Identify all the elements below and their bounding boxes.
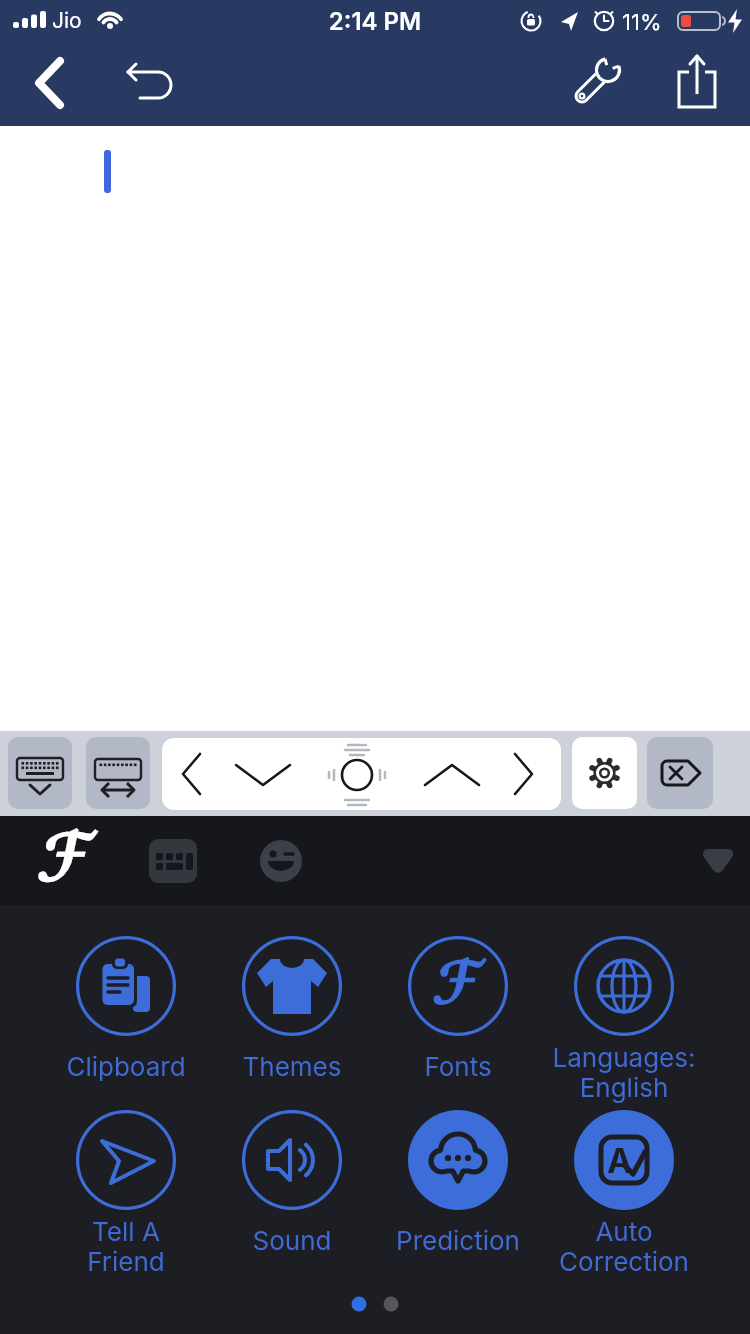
button[interactable]: Clipboard: [43, 936, 209, 1082]
staticText: ℱ: [434, 953, 482, 1019]
button[interactable]: Themes: [209, 936, 375, 1082]
staticText: Clipboard: [43, 1051, 209, 1082]
staticText: Prediction: [375, 1225, 541, 1256]
staticText: ℱ: [39, 824, 92, 898]
button[interactable]: [145, 833, 201, 889]
button[interactable]: [647, 737, 713, 809]
staticText: ℱ: [434, 953, 482, 1019]
staticText: Themes: [209, 1051, 375, 1082]
staticText: 2:14 PM: [0, 7, 750, 36]
button[interactable]: [86, 737, 150, 809]
button[interactable]: A: [541, 1110, 707, 1277]
staticText: ℱ: [39, 824, 92, 898]
button[interactable]: [8, 737, 72, 809]
staticText: Fonts: [375, 1051, 541, 1082]
staticText: Auto Correction: [541, 1216, 707, 1277]
button[interactable]: ℱ: [375, 936, 541, 1082]
button[interactable]: [572, 737, 637, 809]
button[interactable]: [692, 841, 744, 881]
staticText: Sound: [209, 1225, 375, 1256]
button[interactable]: Prediction: [375, 1110, 541, 1256]
staticText: Jio: [52, 8, 82, 33]
staticText: A: [607, 1140, 633, 1181]
button[interactable]: [572, 46, 636, 112]
button[interactable]: [668, 46, 732, 112]
staticText: Languages: English: [541, 1042, 707, 1103]
button[interactable]: ℱ: [30, 816, 100, 905]
staticText: Tell A Friend: [43, 1216, 209, 1277]
button[interactable]: Sound: [209, 1110, 375, 1256]
button[interactable]: [162, 738, 561, 810]
button[interactable]: [120, 50, 184, 116]
staticText: 11%: [622, 9, 662, 36]
button[interactable]: [20, 50, 80, 116]
button[interactable]: Tell A Friend: [43, 1110, 209, 1277]
button[interactable]: Languages: English: [541, 936, 707, 1103]
button[interactable]: [253, 833, 309, 889]
